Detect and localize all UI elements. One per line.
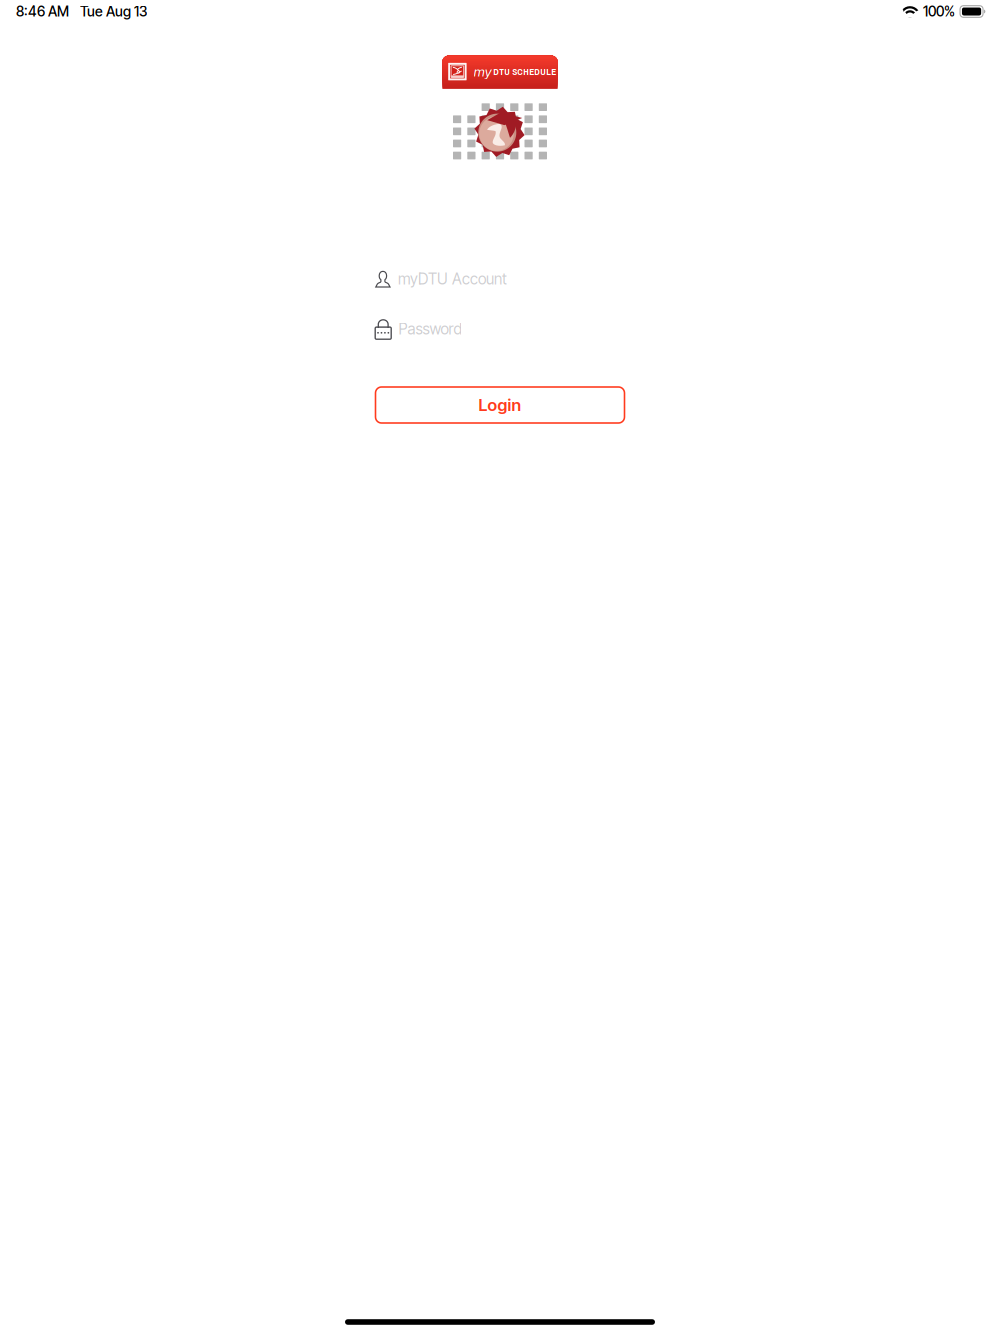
staticText: my <box>474 63 492 80</box>
staticText: myDTU Account <box>398 270 507 288</box>
button[interactable]: Password <box>375 319 625 339</box>
button[interactable]: Login <box>375 387 624 423</box>
staticText: 8:46 AM <box>16 3 69 20</box>
staticText: Tue Aug 13 <box>80 3 147 20</box>
button[interactable]: myDTU Account <box>375 270 625 288</box>
staticText: DTU SCHEDULE <box>493 65 556 78</box>
staticText: 100% <box>923 3 955 20</box>
staticText: Login <box>478 395 521 415</box>
staticText: Password <box>398 320 462 338</box>
